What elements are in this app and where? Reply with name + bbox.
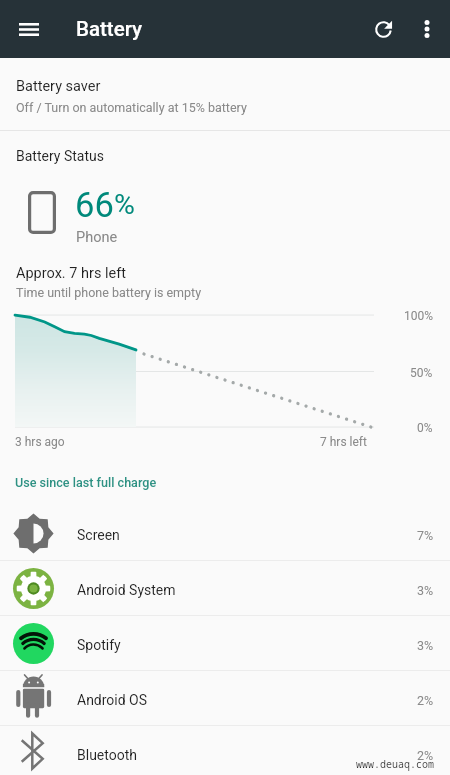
staticText: Approx. 7 hrs left [16, 265, 126, 282]
staticText: Battery Status [16, 148, 104, 164]
button[interactable]: Android OS [0, 671, 450, 725]
staticText: Android System [77, 582, 176, 598]
staticText: Bluetooth [77, 747, 137, 763]
staticText: Battery [76, 17, 143, 41]
staticText: Time until phone battery is empty [16, 285, 202, 300]
button[interactable]: Refresh [361, 7, 405, 51]
button[interactable]: Screen [0, 506, 450, 560]
staticText: 3% [417, 638, 434, 653]
button[interactable]: More options [405, 7, 449, 51]
staticText: Phone [76, 229, 118, 246]
staticText: Android OS [77, 692, 148, 708]
button[interactable]: Battery saver [0, 58, 450, 130]
staticText: 2% [417, 748, 434, 763]
staticText: 3% [417, 583, 434, 598]
staticText: Battery saver [16, 78, 101, 95]
staticText: 66 [75, 185, 114, 225]
staticText: 100% [404, 309, 434, 323]
staticText: 0% [417, 421, 433, 435]
staticText: 50% [410, 366, 433, 380]
button[interactable]: Menu [7, 7, 51, 51]
staticText: Screen [77, 527, 120, 543]
staticText: Spotify [77, 637, 121, 653]
staticText: % [114, 188, 135, 221]
staticText: 7% [417, 528, 434, 543]
staticText: 7 hrs left [320, 435, 367, 449]
staticText: www.deuaq.com [356, 757, 434, 771]
button[interactable]: Use since last full charge [0, 466, 450, 496]
button[interactable]: Bluetooth [0, 726, 450, 775]
staticText: Off / Turn on automatically at 15% batte… [16, 100, 247, 115]
staticText: 2% [417, 693, 434, 708]
button[interactable]: Android System [0, 561, 450, 615]
staticText: 3 hrs ago [15, 435, 65, 449]
button[interactable]: Spotify [0, 616, 450, 670]
staticText: Use since last full charge [15, 475, 157, 490]
